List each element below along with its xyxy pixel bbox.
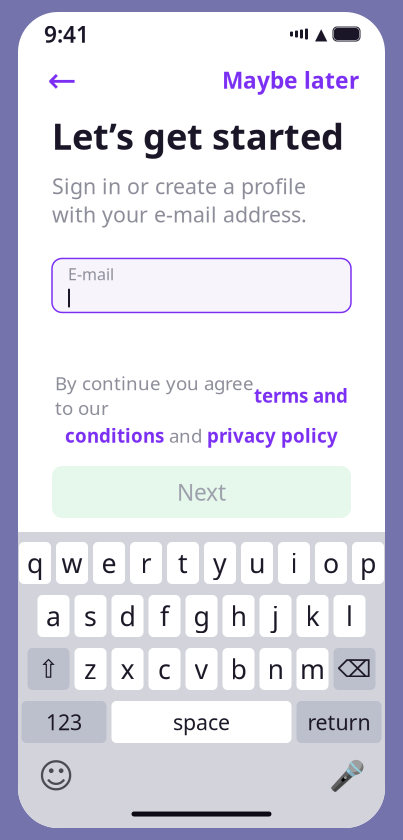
button[interactable]: 123 [21,701,106,743]
staticText: x [120,651,134,687]
staticText: i [290,545,297,581]
button[interactable]: n [259,648,291,690]
staticText: 🎤 [328,759,365,793]
button[interactable]: z [74,648,106,690]
staticText: n [267,651,283,687]
button[interactable]: y [204,542,236,584]
staticText: ← [47,60,76,100]
button[interactable]: k [296,595,328,637]
staticText: ⇧ [38,655,59,683]
staticText: y [213,545,227,581]
button[interactable]: terms and [254,383,348,408]
staticText: 9:41 [44,19,89,49]
staticText: f [160,598,169,634]
staticText: e [101,545,116,581]
button[interactable]: space [111,701,291,743]
staticText: j [272,598,279,634]
button[interactable]: ⌫ [333,648,375,690]
staticText: z [84,651,97,687]
button[interactable]: p [352,542,384,584]
button[interactable]: q [19,542,51,584]
button[interactable]: h [222,595,254,637]
button[interactable]: w [56,542,88,584]
staticText: s [84,598,97,634]
staticText: c [158,651,171,687]
button[interactable]: Emoji [36,756,76,796]
button[interactable]: Next [52,466,351,518]
staticText: Let’s get started [52,112,344,160]
staticText: g [193,598,209,634]
button[interactable]: d [111,595,143,637]
staticText: E-mail [68,263,114,284]
staticText: Maybe later [222,65,359,95]
staticText: 123 [46,708,82,736]
button[interactable]: i [278,542,310,584]
staticText: k [305,598,319,634]
button[interactable]: g [185,595,217,637]
staticText: b [230,651,246,687]
button[interactable]: v [185,648,217,690]
staticText: q [27,545,43,581]
button[interactable]: t [167,542,199,584]
staticText: privacy policy [207,423,338,448]
staticText: Sign in or create a profile with your e-… [52,172,307,228]
staticText: v [194,651,208,687]
staticText: m [300,651,325,687]
staticText: return [307,708,370,736]
button[interactable]: m [296,648,328,690]
button[interactable]: a [37,595,69,637]
staticText: h [230,598,246,634]
button[interactable]: b [222,648,254,690]
button[interactable]: x [111,648,143,690]
staticText: p [360,545,376,581]
button[interactable]: Back [40,58,84,102]
staticText: ▲ [315,25,327,43]
staticText: o [323,545,339,581]
staticText: space [173,708,230,736]
button[interactable]: s [74,595,106,637]
staticText: ☺ [38,756,74,796]
button[interactable]: Maybe later [218,58,363,102]
button[interactable]: f [148,595,180,637]
staticText: terms and [254,383,348,408]
staticText: a [46,598,61,634]
button[interactable]: return [296,701,381,743]
button[interactable]: e [93,542,125,584]
button[interactable]: o [315,542,347,584]
button[interactable]: Dictation [327,756,367,796]
staticText: d [119,598,135,634]
button[interactable]: l [333,595,365,637]
staticText: t [178,545,188,581]
button[interactable]: j [259,595,291,637]
button[interactable]: r [130,542,162,584]
staticText: and [164,423,207,448]
staticText: l [346,598,353,634]
staticText: u [249,545,265,581]
button[interactable]: c [148,648,180,690]
staticText: r [140,545,151,581]
button[interactable]: conditions [65,423,164,448]
staticText: ⌫ [337,655,371,683]
button[interactable]: ⇧ [27,648,69,690]
button[interactable]: privacy policy [207,423,338,448]
staticText: By continue you agree to our [55,371,254,420]
button[interactable]: u [241,542,273,584]
staticText: Next [177,477,226,507]
staticText: conditions [65,423,164,448]
staticText: w [61,545,82,581]
